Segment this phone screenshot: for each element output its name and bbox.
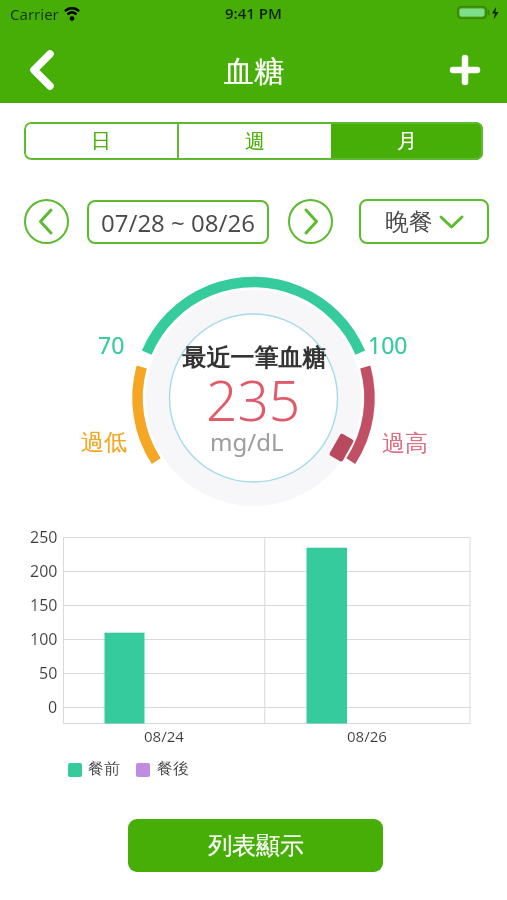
staticText: 週	[245, 129, 265, 154]
button[interactable]	[16, 44, 70, 96]
staticText: 100	[30, 628, 58, 650]
button[interactable]: 07/28 ~ 08/26	[87, 200, 269, 244]
button[interactable]: 列表顯示	[128, 819, 383, 872]
staticText: 07/28 ~ 08/26	[101, 206, 255, 239]
staticText: 最近一筆血糖	[182, 343, 326, 373]
staticText: 列表顯示	[208, 831, 304, 861]
button[interactable]: 日	[24, 122, 177, 160]
button[interactable]: 週	[179, 122, 331, 160]
staticText: 9:41 PM	[225, 3, 282, 23]
button[interactable]	[24, 199, 69, 244]
button[interactable]: 月	[331, 122, 483, 160]
staticText: 150	[30, 594, 58, 616]
button[interactable]	[288, 199, 333, 244]
staticText: 08/26	[347, 726, 387, 746]
staticText: 餐後	[157, 759, 189, 779]
staticText: 50	[39, 662, 58, 684]
staticText: 晚餐	[385, 207, 433, 237]
button[interactable]: 晚餐	[359, 199, 489, 244]
staticText: 血糖	[224, 53, 284, 91]
staticText: 08/24	[144, 726, 184, 746]
staticText: 70	[98, 329, 125, 360]
staticText: 200	[30, 560, 58, 582]
staticText: 日	[91, 129, 111, 154]
staticText: 250	[30, 526, 58, 548]
staticText: 過高	[382, 429, 428, 458]
staticText: 月	[397, 129, 417, 154]
staticText: 餐前	[88, 759, 120, 779]
staticText: Carrier	[10, 4, 59, 24]
button[interactable]	[440, 44, 492, 96]
staticText: 100	[368, 329, 408, 360]
staticText: mg/dL	[210, 425, 284, 458]
staticText: 過低	[81, 428, 127, 457]
staticText: 0	[48, 696, 58, 718]
staticText: 235	[206, 362, 301, 437]
